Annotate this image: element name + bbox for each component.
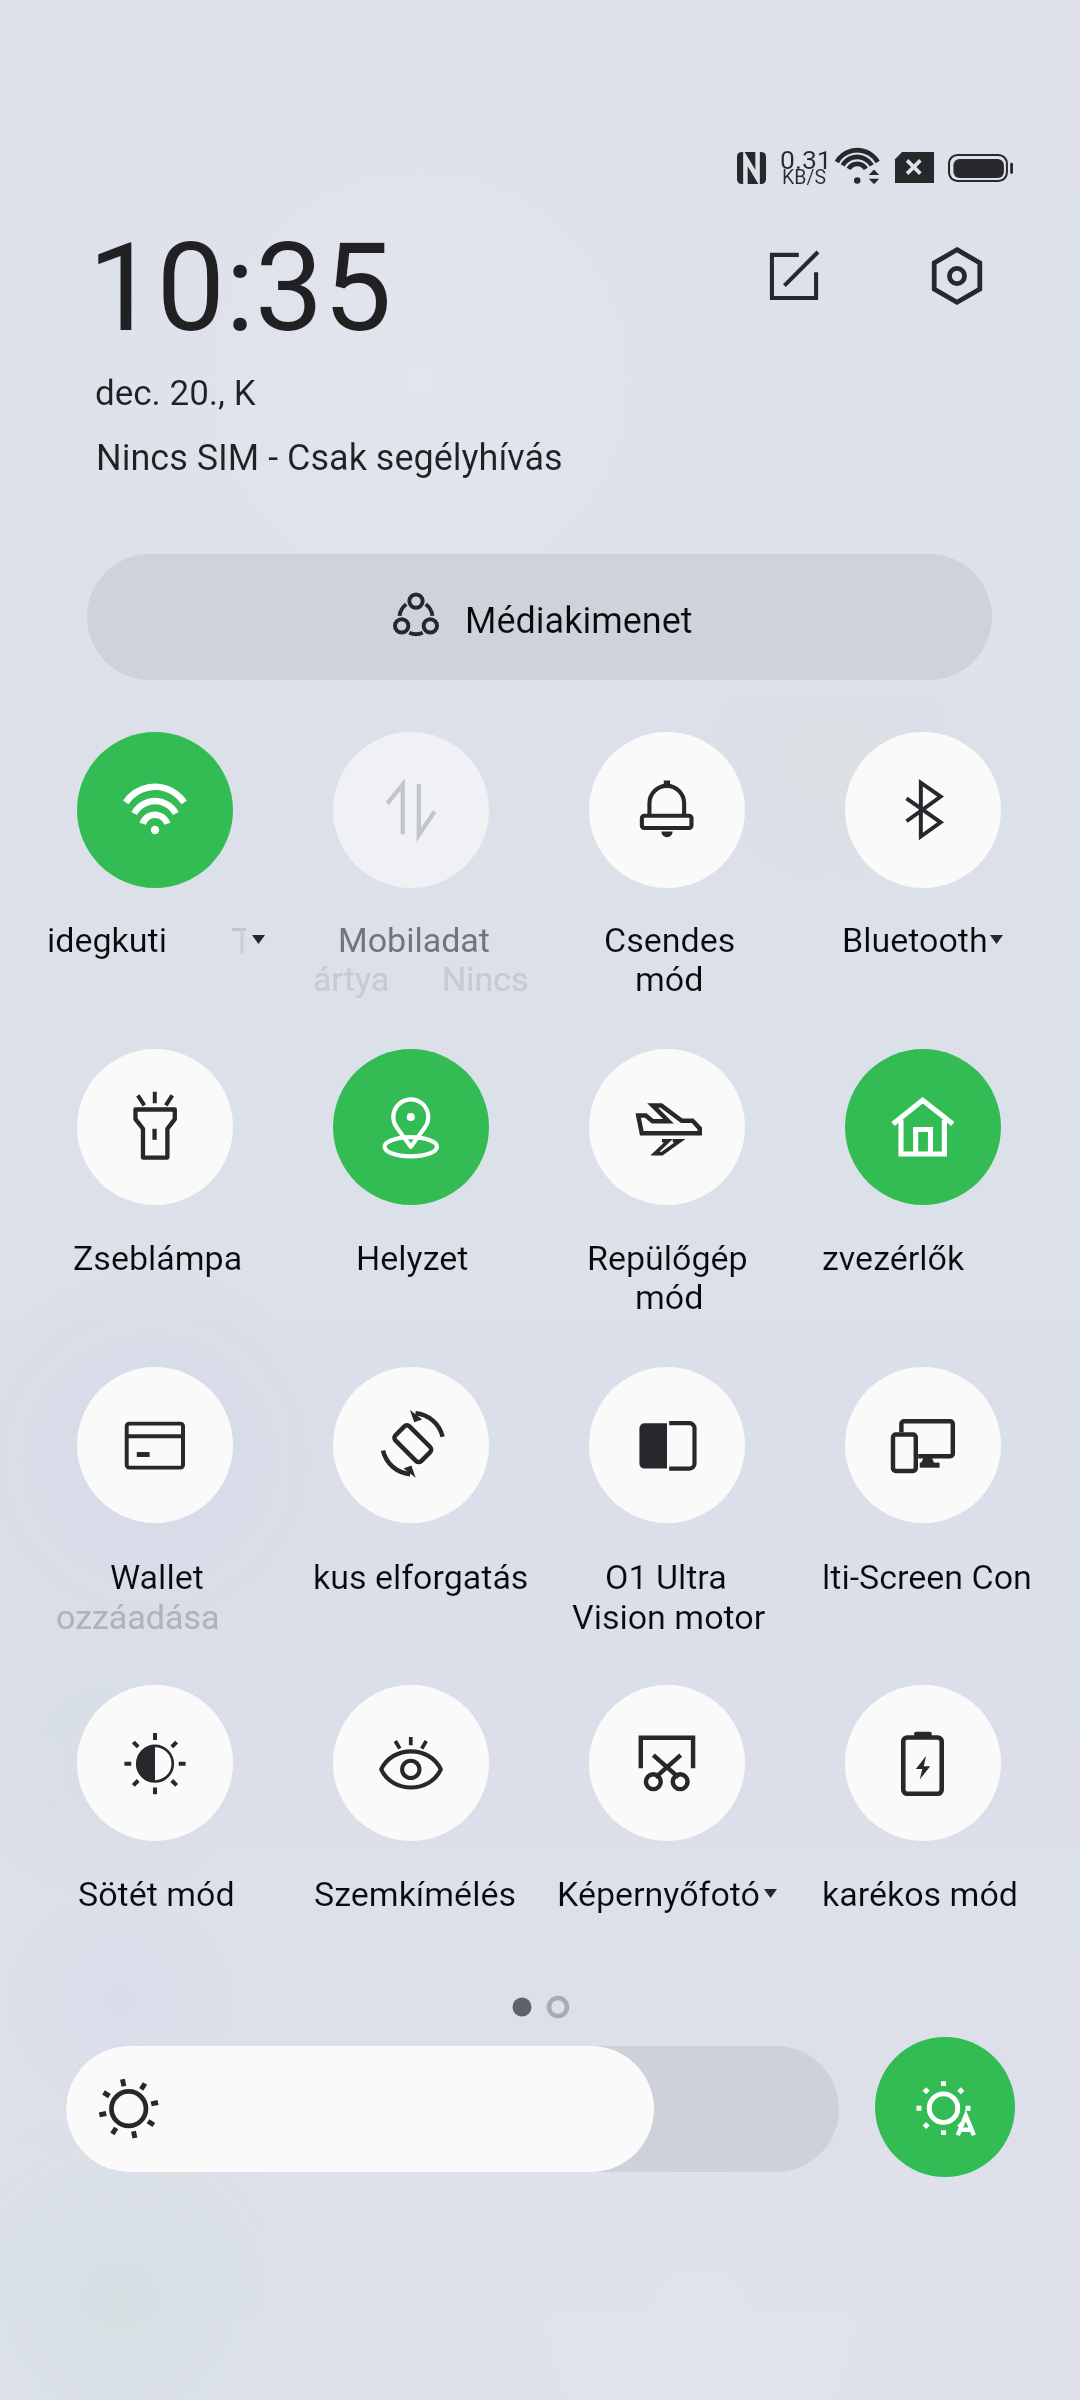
button[interactable]: Brightness (66, 2046, 839, 2172)
staticText: mód (635, 1277, 704, 1317)
staticText: mód (635, 959, 704, 999)
staticText: ártya (313, 959, 390, 999)
staticText: Sötét mód (78, 1874, 235, 1914)
staticText: 0.31 (780, 144, 832, 175)
button[interactable]: Location (283, 1049, 539, 1299)
staticText: Nincs (442, 959, 529, 999)
button[interactable]: Wallet (27, 1367, 283, 1617)
staticText: O1 Ultra (605, 1557, 727, 1597)
button[interactable]: Device controls (795, 1049, 1051, 1299)
button[interactable]: Dark mode (27, 1685, 283, 1935)
staticText: Bluetooth (842, 920, 988, 960)
button[interactable]: Eye comfort (283, 1685, 539, 1935)
staticText: idegkuti (47, 920, 167, 960)
staticText: Zseblámpa (73, 1238, 243, 1278)
button[interactable]: Médiakimenet (87, 554, 992, 680)
button[interactable]: Battery saver (795, 1685, 1051, 1935)
staticText: Szemkímélés (314, 1874, 516, 1914)
staticText: 10:35 (88, 217, 392, 360)
staticText: karékos mód (822, 1874, 1018, 1914)
button[interactable]: Auto brightness (875, 2037, 1015, 2177)
staticText: KB/S (782, 166, 827, 189)
staticText: Helyzet (356, 1238, 469, 1278)
button[interactable]: Edit quick settings (759, 241, 829, 311)
staticText: Médiakimenet (465, 600, 693, 642)
staticText: Képernyőfotó (557, 1874, 760, 1914)
staticText: zvezérlők (822, 1238, 965, 1278)
staticText: Csendes (604, 920, 736, 960)
button[interactable]: Bluetooth (795, 732, 1051, 982)
staticText: Wallet (110, 1557, 204, 1597)
button[interactable]: Multi-Screen Connect (795, 1367, 1051, 1617)
button[interactable]: Screenshot (539, 1685, 795, 1935)
button[interactable]: Silent mode (539, 732, 795, 982)
button[interactable]: Flashlight (27, 1049, 283, 1299)
button[interactable]: Wi-Fi (27, 732, 283, 982)
staticText: kus elforgatás (313, 1557, 529, 1597)
staticText: dec. 20., K (95, 373, 256, 414)
staticText: Mobiladat (338, 920, 490, 960)
staticText: Nincs SIM - Csak segélyhívás (96, 437, 563, 479)
staticText: Repülőgép (587, 1238, 748, 1278)
button[interactable]: Split screen (539, 1367, 795, 1617)
staticText: Vision motor (572, 1597, 766, 1637)
button[interactable]: Airplane mode (539, 1049, 795, 1299)
staticText: ozzáadása (56, 1597, 220, 1637)
button[interactable]: Mobile data (283, 732, 539, 982)
button[interactable]: Settings (922, 241, 992, 311)
staticText: lti-Screen Con (822, 1557, 1032, 1597)
button[interactable]: Auto rotate (283, 1367, 539, 1617)
